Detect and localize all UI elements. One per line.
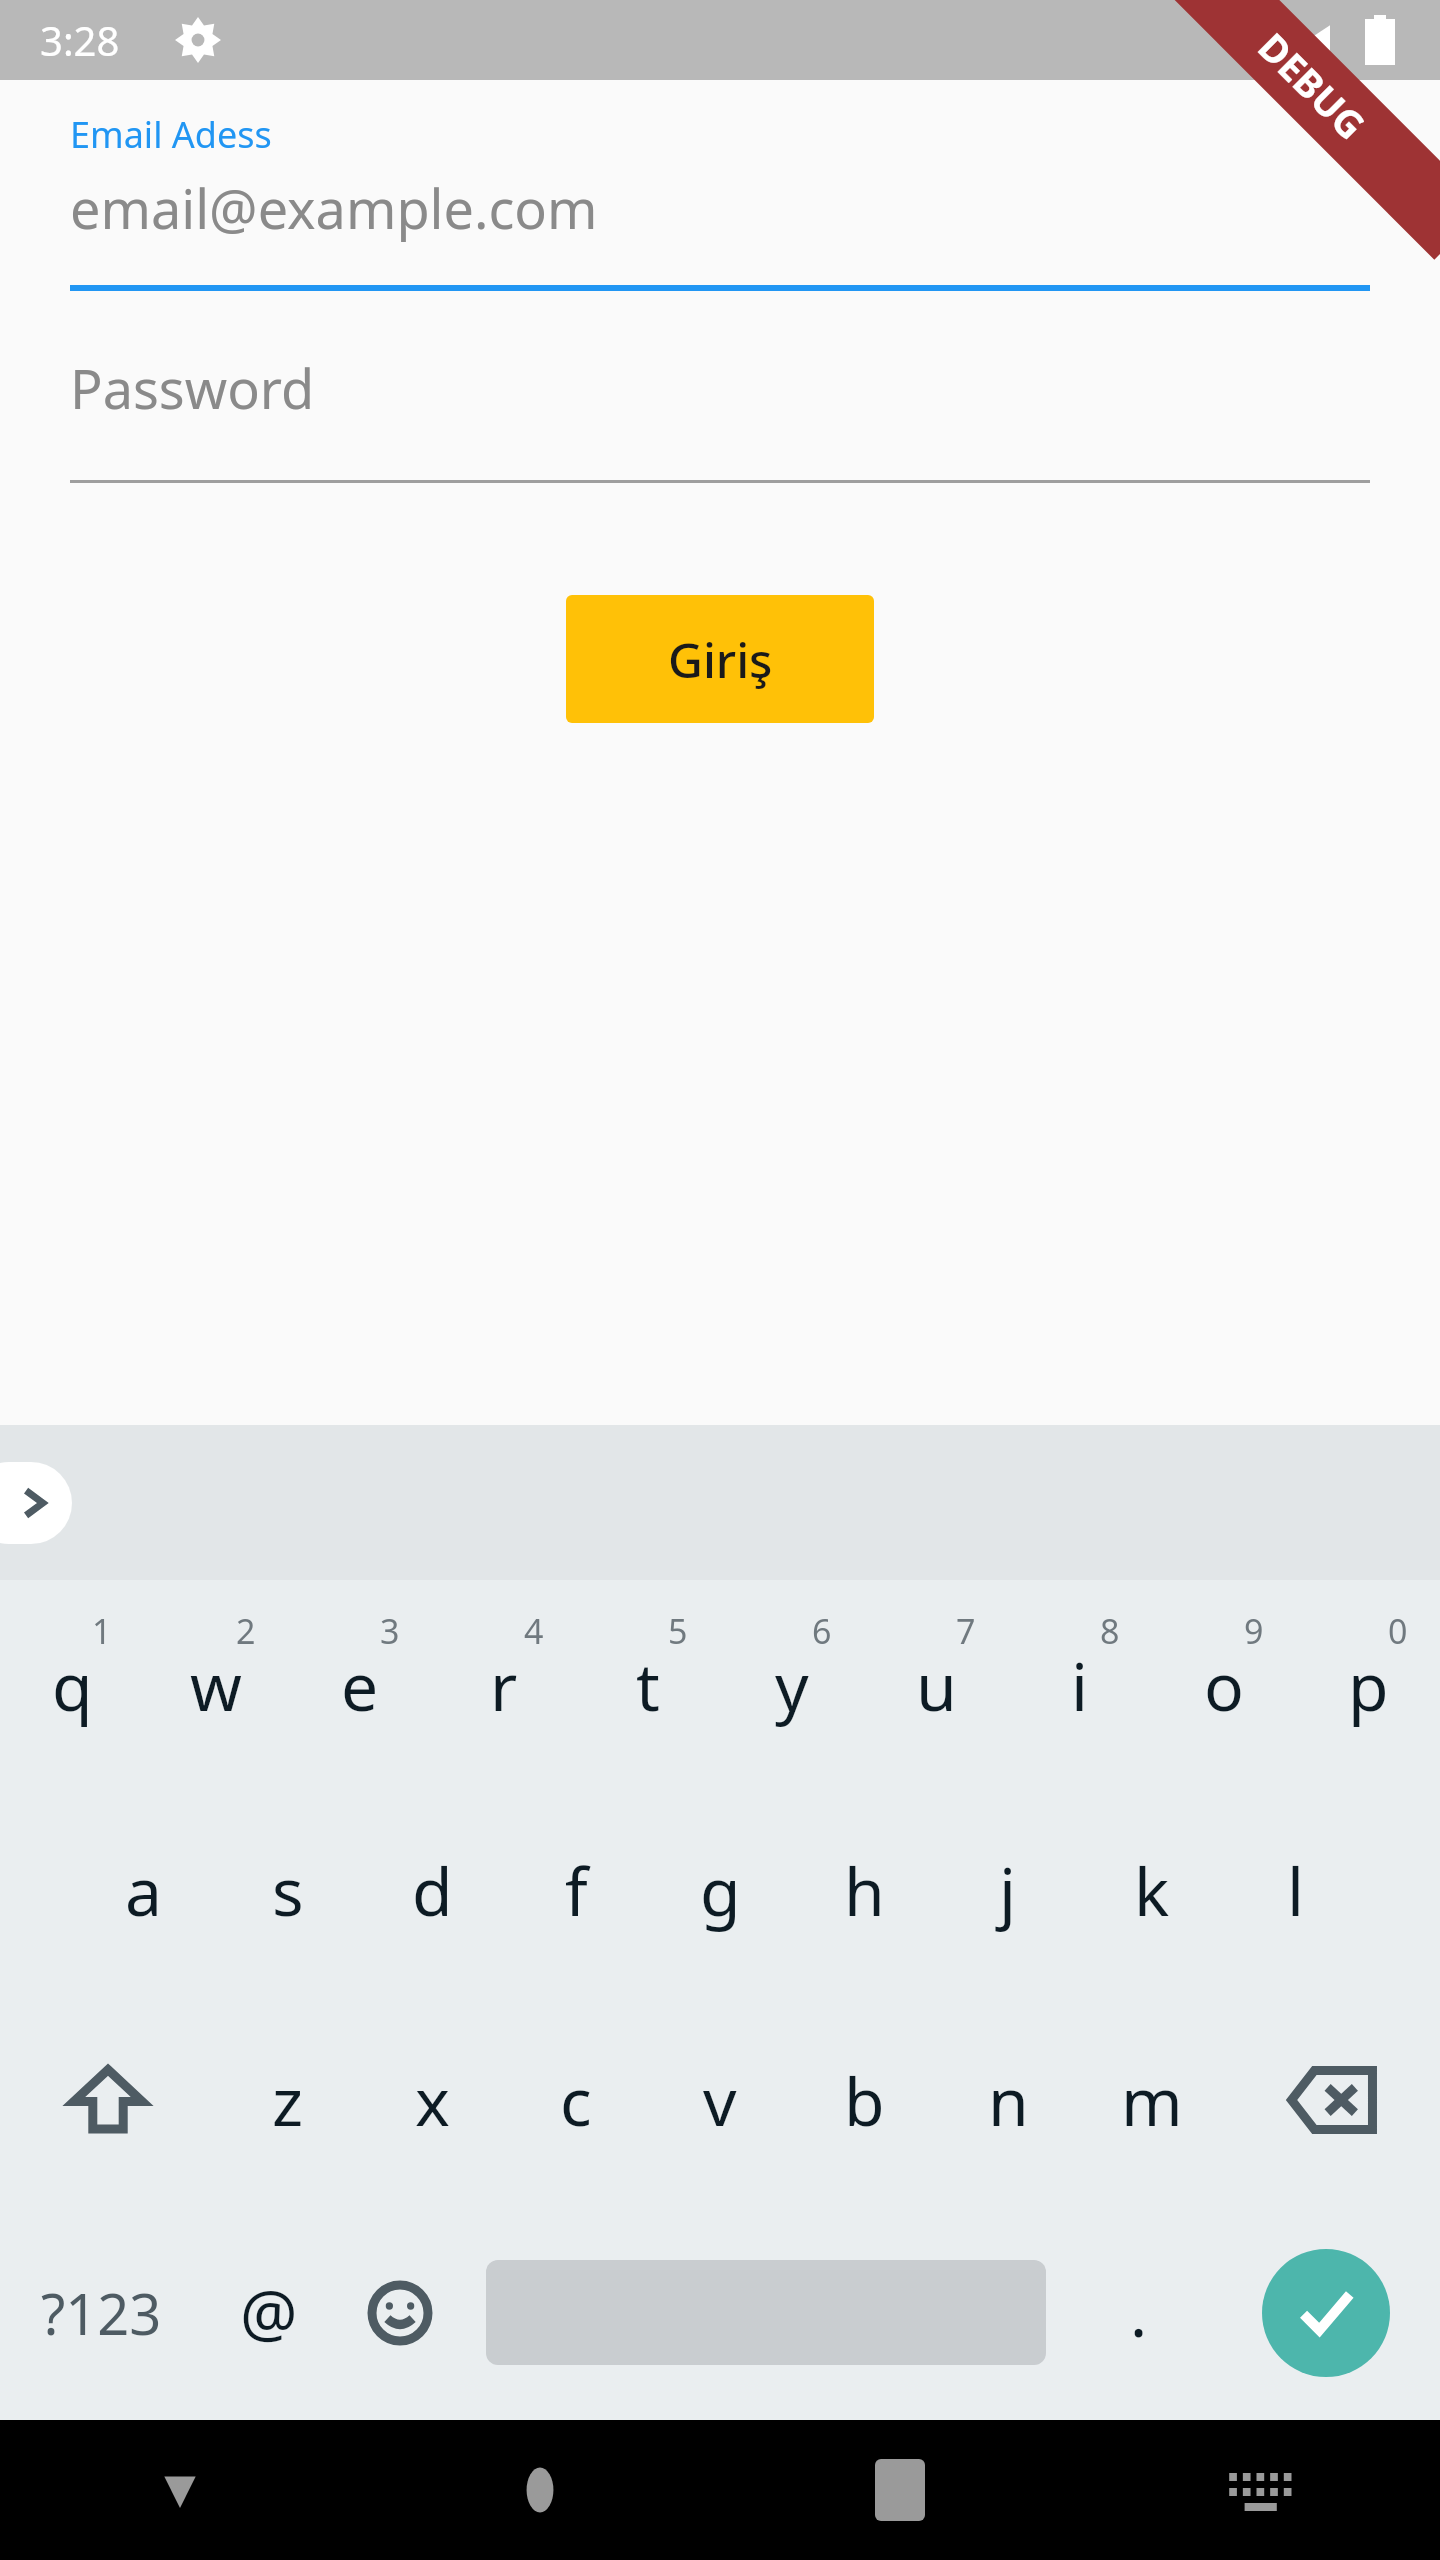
staticText: 6 [812,1608,832,1654]
staticText: w [190,1640,242,1730]
button[interactable]: m [1080,1995,1224,2205]
button[interactable]: Enter [1211,2205,1440,2420]
staticText: t [636,1640,660,1730]
staticText: d [412,1845,453,1935]
button[interactable]: @ [203,2205,334,2420]
button[interactable]: . [1067,2205,1211,2420]
button[interactable]: 7 [864,1580,1008,1785]
button[interactable]: Space [465,2205,1067,2420]
button[interactable]: l [1224,1785,1368,1995]
staticText: j [999,1845,1017,1935]
button[interactable]: Back [0,2420,360,2560]
button[interactable]: 8 [1008,1580,1152,1785]
button[interactable]: z [216,1995,360,2205]
button[interactable]: Backspace [1224,1995,1440,2205]
staticText: 2 [236,1608,256,1654]
button[interactable]: x [360,1995,504,2205]
button[interactable]: 1 [0,1580,144,1785]
button[interactable]: Switch keyboard [1080,2420,1440,2560]
staticText: ?123 [41,2275,162,2351]
staticText: a [125,1845,163,1935]
button[interactable]: 0 [1296,1580,1440,1785]
staticText: 3 [380,1608,400,1654]
button[interactable]: Giriş [566,595,874,723]
staticText: 7 [956,1608,976,1654]
staticText: 1 [92,1608,112,1654]
staticText: Giriş [668,627,773,692]
staticText: x [415,2055,450,2145]
button[interactable]: Email Adess [70,110,1370,291]
button[interactable]: k [1080,1785,1224,1995]
staticText: s [272,1845,304,1935]
staticText: n [988,2055,1029,2145]
button[interactable]: Recents [720,2420,1080,2560]
staticText: 3:28 [40,13,120,67]
button[interactable]: h [792,1785,936,1995]
staticText: v [703,2055,737,2145]
button[interactable]: Expand suggestions [0,1462,72,1544]
staticText: z [272,2055,304,2145]
staticText: 9 [1244,1608,1264,1654]
staticText: m [1121,2055,1183,2145]
staticText: b [844,2055,885,2145]
staticText: 4 [524,1608,544,1654]
staticText: q [52,1640,93,1730]
staticText: f [565,1845,588,1935]
button[interactable]: 5 [576,1580,720,1785]
button[interactable]: Home [360,2420,720,2560]
button[interactable]: 9 [1152,1580,1296,1785]
button[interactable]: v [648,1995,792,2205]
staticText: 0 [1388,1608,1408,1654]
staticText: email@example.com [70,171,598,245]
button[interactable]: n [936,1995,1080,2205]
staticText: 5 [668,1608,688,1654]
button[interactable]: b [792,1995,936,2205]
staticText: y [775,1640,809,1730]
staticText: e [341,1640,379,1730]
button[interactable]: j [936,1785,1080,1995]
staticText: k [1134,1845,1170,1935]
button[interactable]: Password [70,351,1370,483]
button[interactable]: Shift [0,1995,216,2205]
button[interactable]: c [504,1995,648,2205]
staticText: o [1204,1640,1244,1730]
button[interactable]: 6 [720,1580,864,1785]
button[interactable]: a [72,1785,216,1995]
button[interactable]: 4 [432,1580,576,1785]
staticText: h [844,1845,885,1935]
staticText: . [1130,2269,1148,2356]
staticText: p [1348,1640,1389,1730]
staticText: r [490,1640,518,1730]
button[interactable]: f [504,1785,648,1995]
button[interactable]: ?123 [0,2205,203,2420]
staticText: DEBUG [1248,21,1377,150]
button[interactable]: s [216,1785,360,1995]
staticText: 8 [1100,1608,1120,1654]
staticText: l [1287,1845,1305,1935]
staticText: Password [70,351,315,425]
staticText: Email Adess [70,110,272,159]
staticText: @ [240,2269,298,2356]
button[interactable]: d [360,1785,504,1995]
staticText: u [916,1640,957,1730]
button[interactable]: 3 [288,1580,432,1785]
staticText: g [700,1845,741,1935]
staticText: c [560,2055,592,2145]
button[interactable]: 2 [144,1580,288,1785]
button[interactable]: Emoji [334,2205,465,2420]
staticText: i [1071,1640,1089,1730]
button[interactable]: g [648,1785,792,1995]
